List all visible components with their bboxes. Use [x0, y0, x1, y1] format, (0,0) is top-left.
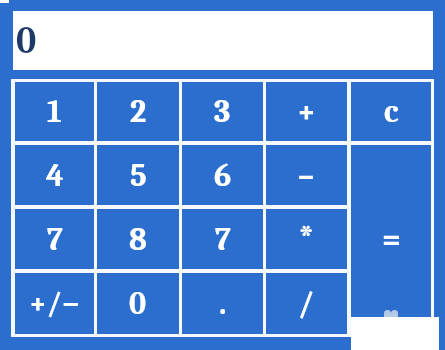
- staticText: c: [384, 93, 399, 130]
- staticText: 7: [47, 221, 63, 258]
- button[interactable]: /: [266, 273, 347, 334]
- button[interactable]: 8: [97, 209, 179, 269]
- button[interactable]: 0: [97, 273, 179, 334]
- staticText: 4: [46, 157, 64, 194]
- staticText: *: [298, 217, 316, 261]
- staticText: 7: [215, 221, 231, 258]
- button[interactable]: c: [351, 82, 431, 141]
- button[interactable]: 0: [13, 11, 433, 70]
- button[interactable]: 5: [97, 145, 179, 205]
- staticText: .: [219, 285, 227, 322]
- staticText: –: [298, 157, 315, 194]
- staticText: +/−: [29, 286, 80, 321]
- staticText: 5: [130, 157, 147, 194]
- staticText: 0: [16, 19, 37, 63]
- button[interactable]: =: [351, 145, 431, 334]
- button[interactable]: 2: [97, 82, 179, 141]
- staticText: 6: [214, 157, 232, 194]
- button[interactable]: 1: [15, 82, 94, 141]
- button[interactable]: +/−: [15, 273, 94, 334]
- button[interactable]: 7: [15, 209, 94, 269]
- button[interactable]: *: [266, 209, 347, 269]
- staticText: 3: [214, 93, 231, 130]
- button[interactable]: .: [182, 273, 263, 334]
- staticText: 1: [47, 93, 62, 130]
- staticText: =: [382, 221, 401, 258]
- staticText: 8: [129, 221, 147, 258]
- button[interactable]: 6: [182, 145, 263, 205]
- button[interactable]: 3: [182, 82, 263, 141]
- button[interactable]: +: [266, 82, 347, 141]
- staticText: 0: [129, 285, 147, 322]
- staticText: +: [297, 93, 316, 130]
- button[interactable]: 7: [182, 209, 263, 269]
- button[interactable]: 4: [15, 145, 94, 205]
- staticText: /: [298, 285, 315, 322]
- staticText: 2: [130, 93, 147, 130]
- button[interactable]: –: [266, 145, 347, 205]
